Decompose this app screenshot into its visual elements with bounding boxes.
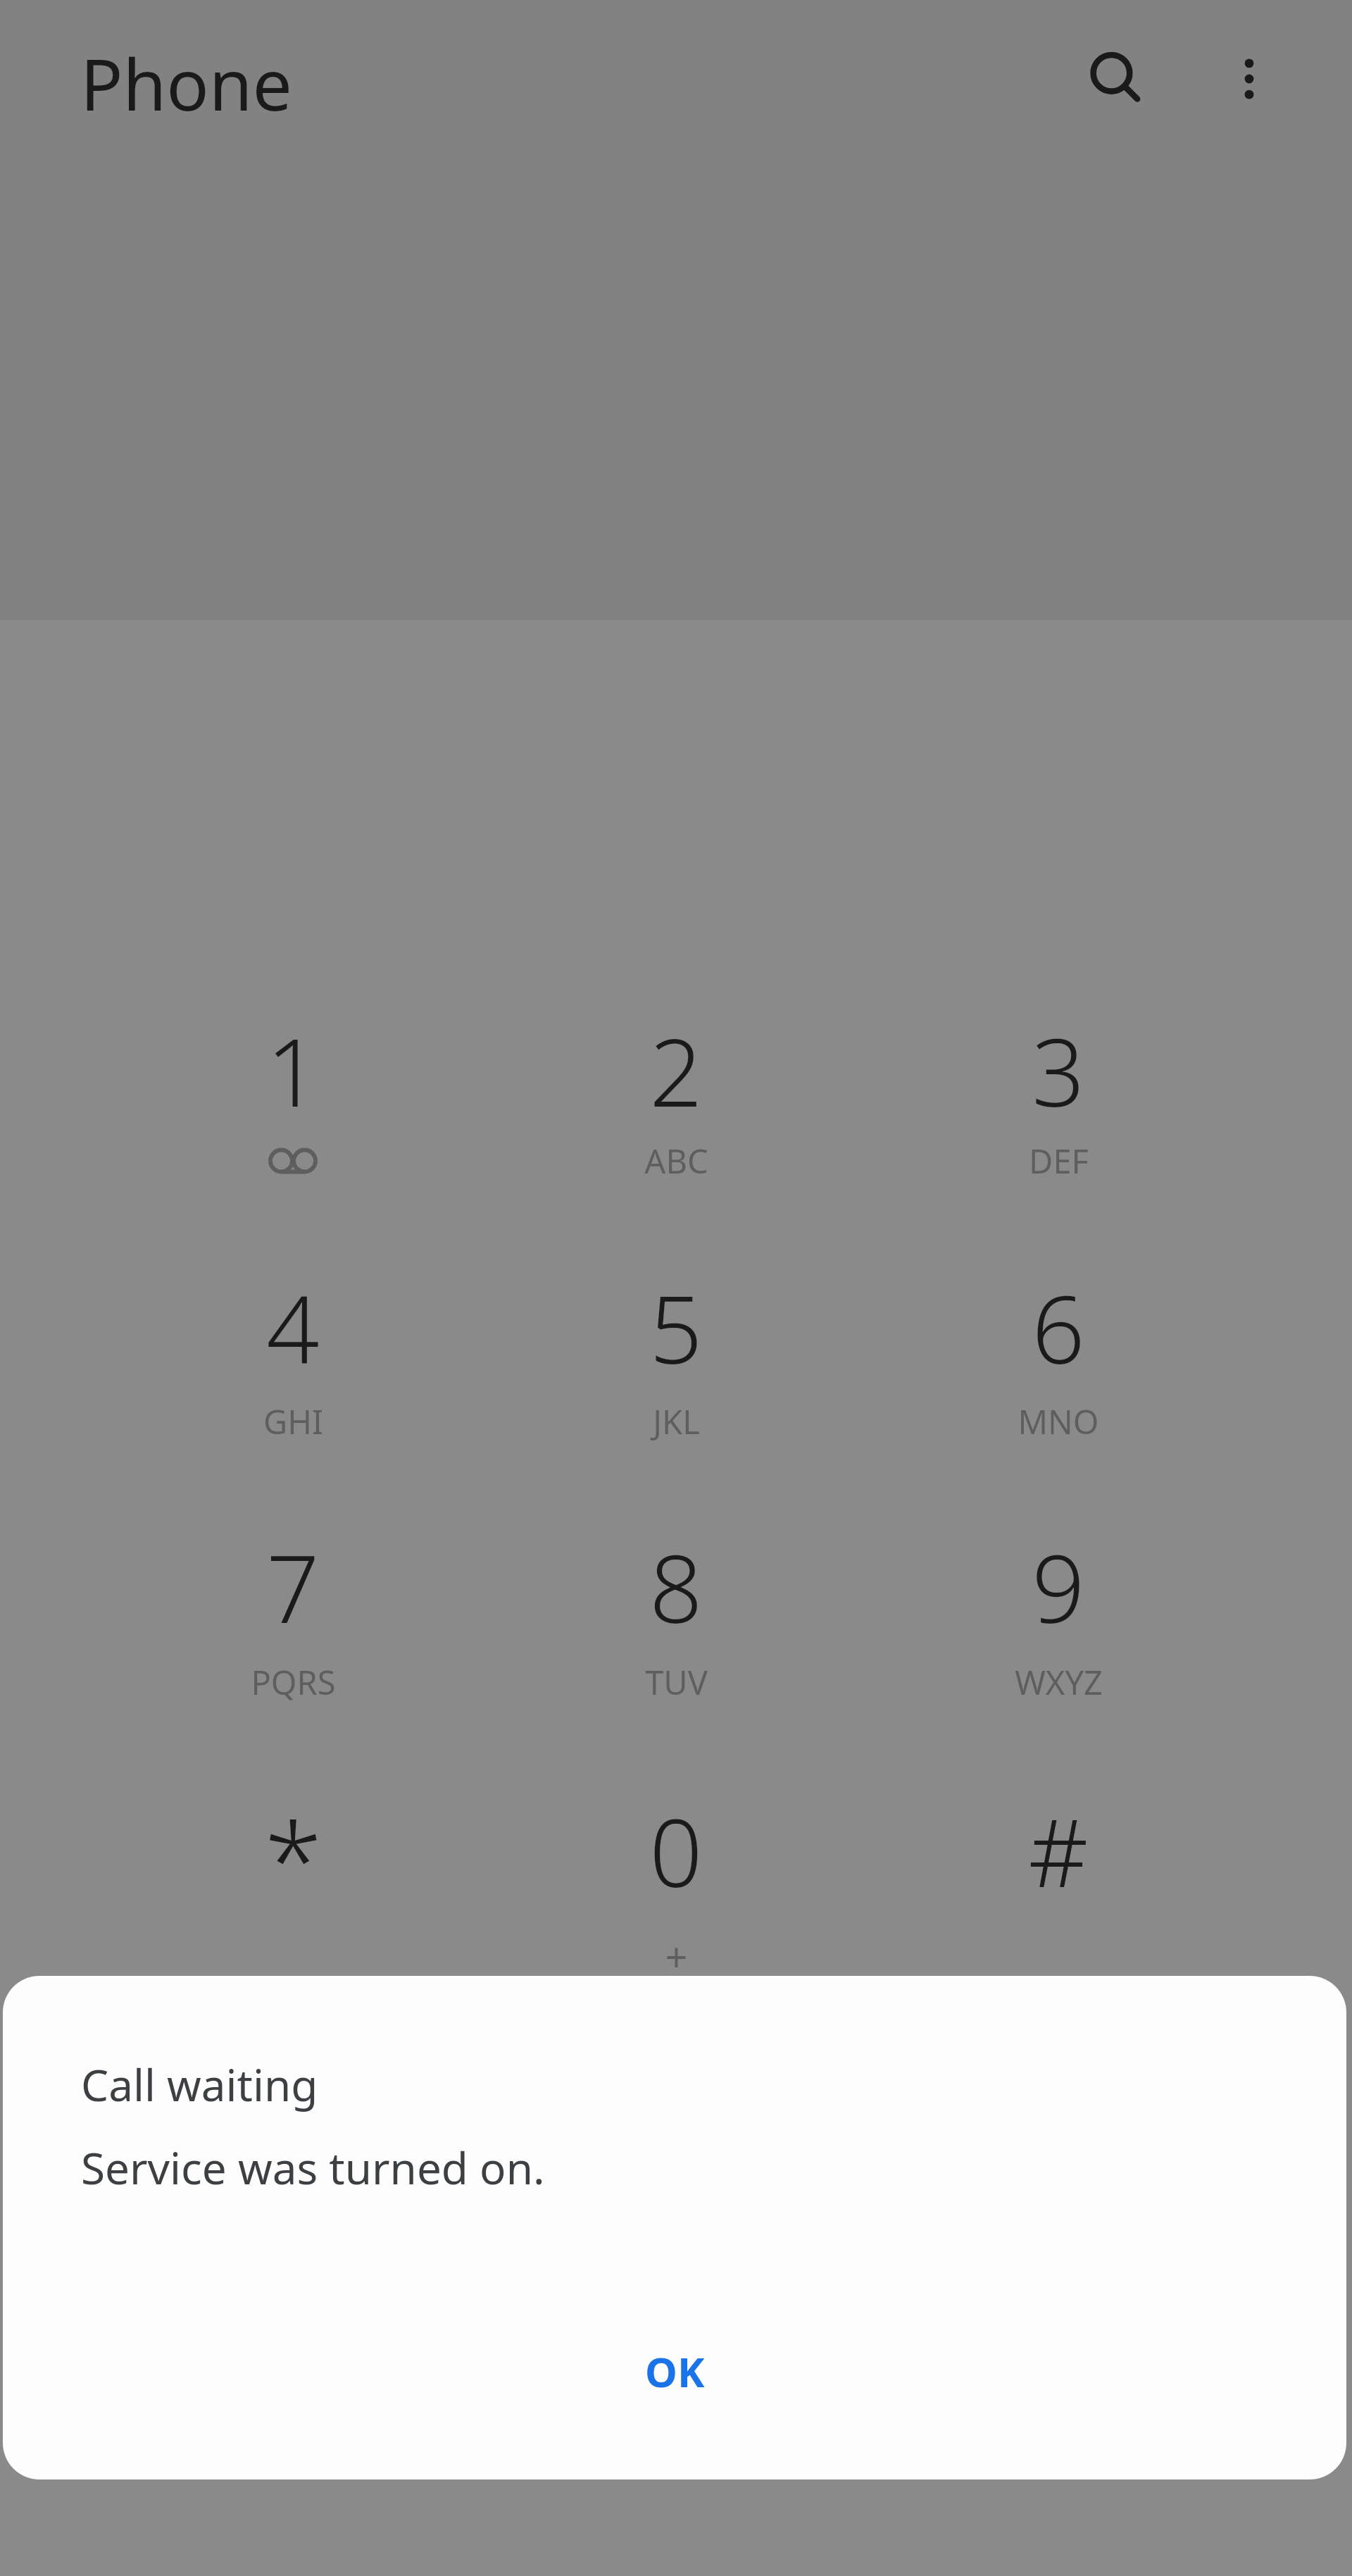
staticText: GHI <box>263 1399 323 1444</box>
button[interactable] <box>907 1250 1210 1490</box>
button[interactable] <box>907 1774 1210 2013</box>
button[interactable] <box>142 1250 444 1490</box>
button[interactable]: More options <box>1193 23 1306 135</box>
staticText: 3 <box>1032 1007 1085 1134</box>
staticText: 0 <box>649 1788 703 1915</box>
staticText: Phone <box>80 35 292 131</box>
button[interactable] <box>525 1774 827 2013</box>
button[interactable]: Search <box>1060 23 1172 135</box>
button[interactable] <box>142 1774 444 2013</box>
staticText: 4 <box>266 1264 320 1391</box>
staticText: Service was turned on. <box>81 2138 545 2197</box>
staticText: + <box>665 1929 688 1980</box>
staticText: 5 <box>649 1264 703 1391</box>
staticText: MNO <box>1018 1399 1099 1444</box>
staticText: PQRS <box>251 1660 336 1705</box>
staticText: * <box>264 1786 323 1916</box>
staticText: TUV <box>645 1660 708 1705</box>
staticText: 7 <box>266 1524 320 1650</box>
staticText: WXYZ <box>1015 1660 1103 1705</box>
staticText: # <box>1028 1788 1089 1915</box>
button[interactable] <box>907 1510 1210 1749</box>
staticText: Call waiting <box>81 2055 318 2114</box>
button[interactable] <box>142 1510 444 1749</box>
staticText: 2 <box>649 1007 703 1134</box>
button[interactable] <box>525 1510 827 1749</box>
button[interactable] <box>142 993 444 1233</box>
staticText: 8 <box>649 1524 703 1650</box>
staticText: 6 <box>1032 1264 1085 1391</box>
staticText: JKL <box>653 1399 700 1444</box>
button[interactable]: Phone <box>70 28 302 138</box>
staticText: 1 <box>266 1007 320 1134</box>
staticText: OK <box>645 2344 705 2399</box>
button[interactable] <box>525 1250 827 1490</box>
button[interactable] <box>907 993 1210 1233</box>
staticText: DEF <box>1029 1138 1089 1183</box>
button[interactable]: OK <box>593 2325 757 2418</box>
staticText: ABC <box>644 1138 708 1183</box>
staticText: 9 <box>1032 1524 1085 1650</box>
button[interactable] <box>525 993 827 1233</box>
